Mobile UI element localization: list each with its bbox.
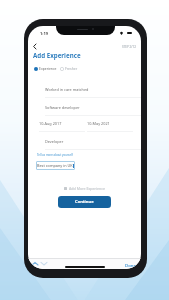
button[interactable]: Continue bbox=[58, 196, 111, 208]
staticText: 10-Aug 2017 bbox=[39, 121, 62, 126]
staticText: Add Experience bbox=[33, 51, 81, 59]
staticText: Add More Experience bbox=[69, 186, 106, 191]
button[interactable]: 10-May 2021 bbox=[87, 118, 133, 132]
staticText: Experience bbox=[39, 66, 57, 71]
button[interactable]: Developer bbox=[45, 136, 141, 150]
button[interactable]: 10-Aug 2017 bbox=[39, 118, 85, 132]
staticText: Best company in UK bbox=[37, 163, 73, 168]
staticText: Developer bbox=[45, 139, 64, 144]
button[interactable]: Worked in care matched bbox=[45, 84, 141, 98]
button[interactable]: Fresher bbox=[59, 64, 79, 73]
button[interactable]: Add More Experience bbox=[62, 184, 108, 193]
button[interactable]: Done bbox=[123, 260, 138, 269]
button[interactable]: Experience bbox=[33, 64, 58, 73]
staticText: Continue bbox=[75, 199, 94, 205]
staticText: Tell us more about yourself bbox=[37, 153, 73, 157]
staticText: STEP 2/12 bbox=[122, 45, 136, 49]
button[interactable]: Back bbox=[28, 39, 41, 53]
staticText: Software developer bbox=[45, 105, 80, 110]
staticText: Fresher bbox=[65, 66, 78, 71]
button[interactable]: Best company in UK bbox=[36, 161, 75, 170]
button[interactable]: Software developer bbox=[45, 102, 141, 116]
button[interactable]: Next field bbox=[38, 259, 49, 268]
staticText: 1:19 bbox=[40, 31, 48, 36]
staticText: Done bbox=[125, 262, 136, 268]
staticText: 10-May 2021 bbox=[87, 121, 110, 126]
staticText: Worked in care matched bbox=[45, 87, 89, 92]
button[interactable]: Previous field bbox=[29, 259, 40, 268]
